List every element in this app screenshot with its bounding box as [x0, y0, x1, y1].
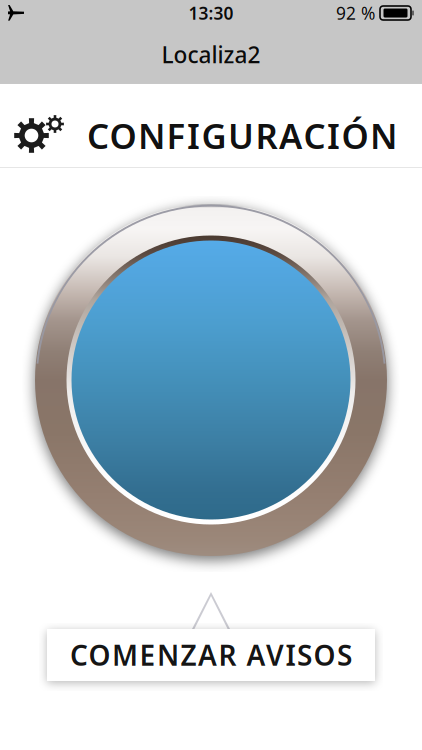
staticText: COMENZAR AVISOS [70, 636, 352, 674]
staticText: CONFIGURACIÓN [87, 112, 397, 158]
button[interactable]: COMENZAR AVISOS [47, 592, 375, 681]
staticText: 92 % [336, 1, 375, 24]
button[interactable] [30, 199, 392, 561]
staticText: 13:30 [188, 1, 233, 24]
button[interactable]: CONFIGURACIÓN [0, 84, 422, 167]
staticText: Localiza2 [161, 39, 260, 69]
